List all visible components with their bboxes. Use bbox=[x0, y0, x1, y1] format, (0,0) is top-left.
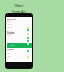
staticText: Nunito bbox=[7, 24, 12, 26]
staticText: Saved bbox=[7, 48, 14, 51]
staticText: Mukta bbox=[7, 56, 12, 58]
staticText: Lora bbox=[7, 53, 10, 55]
button[interactable]: Install bbox=[7, 43, 32, 48]
staticText: Inter bbox=[7, 35, 11, 37]
staticText: Oswald bbox=[7, 27, 12, 29]
staticText: Oliver bbox=[14, 4, 24, 8]
staticText: Styles bbox=[7, 31, 15, 35]
staticText: Fonts Art bbox=[7, 18, 17, 21]
staticText: Fonts Art bbox=[12, 10, 26, 14]
staticText: Install bbox=[10, 44, 15, 46]
staticText: Roboto bbox=[7, 21, 12, 23]
